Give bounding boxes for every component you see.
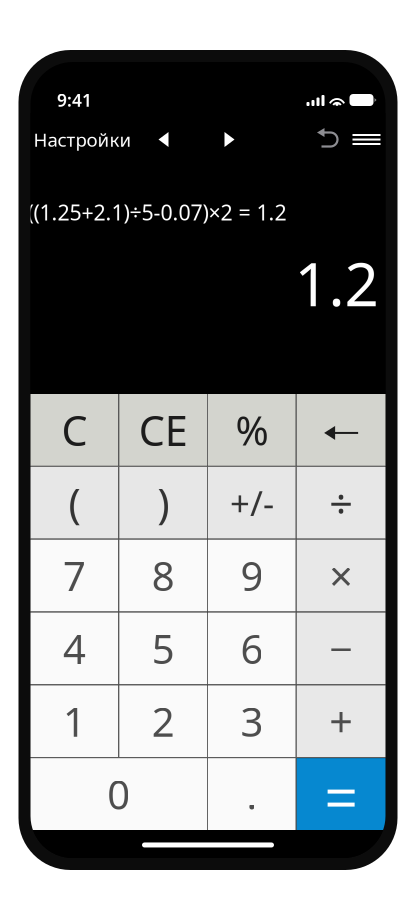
button[interactable]: +/- (208, 467, 296, 539)
staticText: 1.2 (294, 243, 378, 323)
staticText: 6 (240, 622, 263, 675)
button[interactable]: ÷ (297, 467, 386, 539)
button[interactable]: 5 (119, 612, 207, 684)
staticText: − (329, 621, 353, 676)
staticText: 9 (240, 549, 263, 602)
staticText: 4 (63, 622, 86, 675)
button[interactable]: % (208, 394, 296, 466)
staticText: ((1.25+2.1)÷5-0.07)×2 = 1.2 (27, 198, 286, 226)
staticText: 3 (240, 695, 263, 748)
button[interactable]: 1 (30, 685, 118, 757)
staticText: % (235, 403, 268, 456)
button[interactable]: Undo (308, 113, 348, 166)
staticText: 8 (152, 549, 175, 602)
staticText: Настройки (33, 127, 131, 152)
button[interactable]: Equals (297, 758, 386, 830)
button[interactable]: + (297, 685, 386, 757)
staticText: ÷ (329, 475, 353, 530)
button[interactable]: Menu (346, 113, 386, 166)
staticText: CE (139, 402, 188, 457)
button[interactable]: ( (30, 467, 118, 539)
staticText: C (61, 402, 87, 457)
button[interactable]: 8 (119, 540, 207, 611)
button[interactable]: 3 (208, 685, 296, 757)
staticText: + (329, 694, 353, 749)
staticText: 2 (152, 695, 175, 748)
button[interactable]: Backspace (297, 394, 386, 466)
button[interactable]: 6 (208, 612, 296, 684)
button[interactable]: 7 (30, 540, 118, 611)
staticText: ) (157, 475, 169, 530)
staticText: . (246, 767, 257, 821)
button[interactable]: 9 (208, 540, 296, 611)
button[interactable]: ) (119, 467, 207, 539)
button[interactable]: 4 (30, 612, 118, 684)
button[interactable]: 2 (119, 685, 207, 757)
button[interactable]: Next (207, 113, 251, 166)
staticText: 5 (152, 622, 175, 675)
button[interactable]: − (297, 612, 386, 684)
button[interactable]: × (297, 540, 386, 611)
staticText: ( (68, 475, 80, 530)
button[interactable]: Previous (141, 113, 185, 166)
button[interactable]: C (30, 394, 118, 466)
button[interactable]: . (208, 758, 296, 830)
button[interactable]: Настройки (30, 113, 143, 166)
staticText: 9:41 (57, 88, 92, 111)
staticText: 1 (63, 695, 86, 748)
staticText: +/- (230, 480, 274, 526)
button[interactable]: 0 (30, 758, 207, 830)
staticText: 0 (107, 767, 130, 821)
staticText: × (329, 548, 353, 603)
button[interactable]: CE (119, 394, 207, 466)
staticText: 7 (63, 549, 86, 602)
